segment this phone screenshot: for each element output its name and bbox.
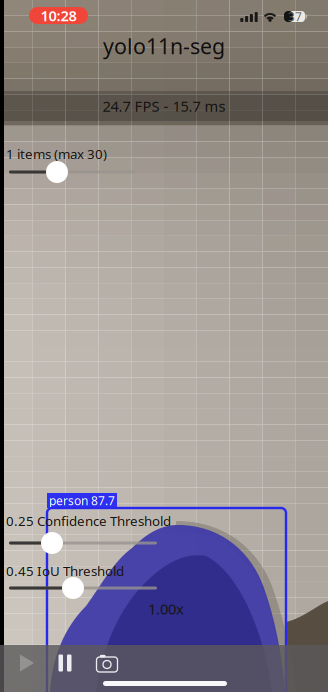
button[interactable]: 0.25 Confidence Threshold <box>9 532 169 554</box>
staticText: yolo11n-seg <box>103 32 225 60</box>
staticText: 24.7 FPS - 15.7 ms <box>102 96 225 116</box>
staticText: person 87.7 <box>49 492 115 508</box>
button[interactable]: Play <box>6 648 48 678</box>
staticText: 0.25 Confidence Threshold <box>6 512 171 530</box>
staticText: 37 <box>288 8 302 24</box>
button[interactable]: 1 items (max 30) <box>9 161 148 183</box>
staticText: 1 items (max 30) <box>6 145 107 163</box>
button[interactable]: Pause <box>44 648 86 678</box>
button[interactable]: 0.45 IoU Threshold <box>9 577 169 599</box>
staticText: 1.00x <box>148 599 184 618</box>
staticText: 10:28 <box>40 6 76 25</box>
button[interactable]: Switch camera <box>86 648 128 678</box>
staticText: 0.45 IoU Threshold <box>6 562 124 580</box>
